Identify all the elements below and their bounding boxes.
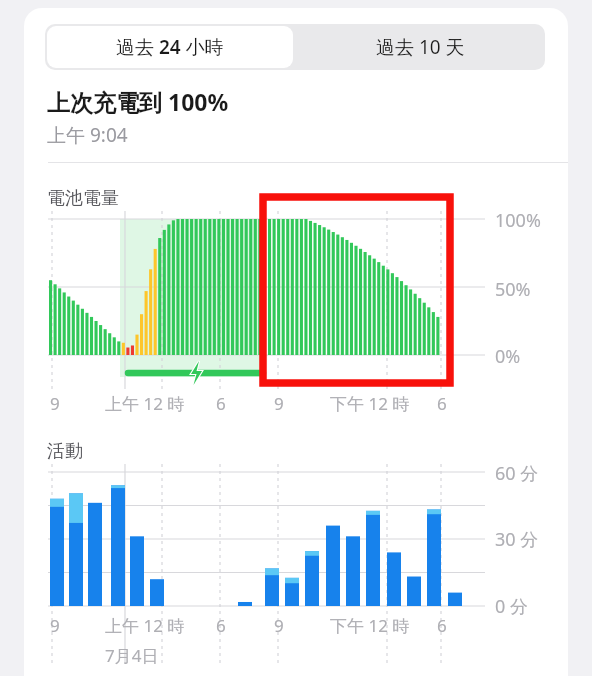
staticText: 過去 24 小時 — [116, 34, 224, 60]
staticText: 上午 9:04 — [47, 122, 128, 148]
staticText: 9 — [50, 614, 60, 637]
staticText: 上午 12 時 — [105, 392, 185, 415]
staticText: 100% — [495, 208, 541, 233]
staticText: 電池電量 — [47, 187, 119, 210]
staticText: 過去 10 天 — [376, 34, 465, 60]
staticText: 0% — [495, 344, 521, 369]
staticText: 上次充電到 100% — [47, 86, 229, 117]
staticText: 60 分 — [495, 461, 539, 486]
staticText: 50% — [495, 277, 531, 302]
staticText: 30 分 — [495, 527, 539, 552]
staticText: 6 — [437, 614, 447, 637]
staticText: 9 — [274, 392, 284, 415]
staticText: 上午 12 時 — [105, 614, 185, 637]
staticText: 0 分 — [495, 594, 528, 619]
button[interactable]: 過去 24 小時 — [47, 26, 293, 68]
staticText: 活動 — [47, 440, 83, 463]
staticText: 6 — [437, 392, 447, 415]
staticText: 7月4日 — [105, 644, 159, 667]
staticText: 6 — [216, 614, 226, 637]
staticText: 9 — [50, 392, 60, 415]
staticText: 6 — [216, 392, 226, 415]
staticText: 下午 12 時 — [330, 392, 410, 415]
button[interactable]: 過去 10 天 — [295, 24, 545, 70]
staticText: 下午 12 時 — [330, 614, 410, 637]
staticText: 9 — [274, 614, 284, 637]
